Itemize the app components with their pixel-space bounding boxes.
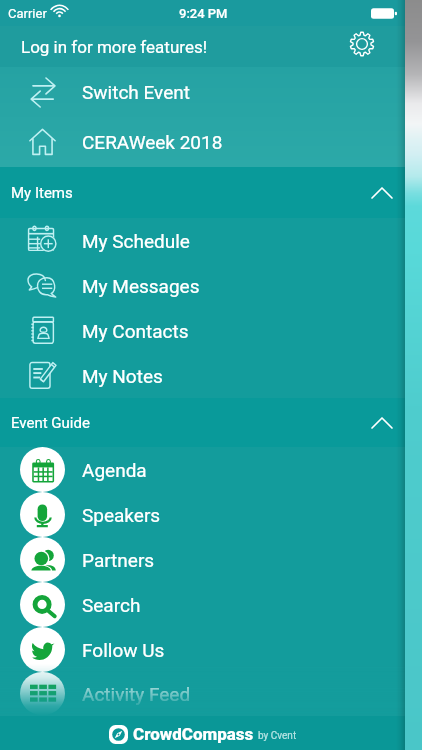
- staticText: My Items: [11, 184, 73, 202]
- staticText: My Notes: [82, 365, 163, 387]
- button[interactable]: My Notes: [0, 353, 405, 398]
- staticText: Event Guide: [11, 414, 90, 432]
- staticText: Log in for more features!: [21, 37, 208, 57]
- staticText: Follow Us: [82, 639, 165, 661]
- staticText: Activity Feed: [82, 683, 191, 705]
- button[interactable]: Search: [0, 582, 405, 627]
- staticText: Partners: [82, 549, 155, 571]
- button[interactable]: CERAWeek 2018: [0, 117, 405, 167]
- staticText: Speakers: [82, 504, 161, 526]
- button[interactable]: Switch Event: [0, 67, 405, 117]
- button[interactable]: My Items: [0, 167, 405, 218]
- staticText: Carrier: [8, 6, 47, 21]
- staticText: by Cvent: [258, 730, 297, 742]
- staticText: Search: [82, 594, 141, 616]
- staticText: CERAWeek 2018: [82, 131, 223, 153]
- button[interactable]: Speakers: [0, 492, 405, 537]
- button[interactable]: Log in for more features!: [0, 26, 405, 67]
- button[interactable]: Settings: [345, 27, 379, 61]
- staticText: My Schedule: [82, 230, 190, 252]
- button[interactable]: My Contacts: [0, 308, 405, 353]
- staticText: My Contacts: [82, 320, 189, 342]
- button[interactable]: My Schedule: [0, 218, 405, 263]
- button[interactable]: Follow Us: [0, 627, 405, 672]
- button[interactable]: My Messages: [0, 263, 405, 308]
- staticText: 9:24 PM: [179, 6, 228, 21]
- button[interactable]: Activity Feed: [0, 672, 405, 715]
- button[interactable]: Event Guide: [0, 398, 405, 447]
- staticText: Switch Event: [82, 81, 190, 103]
- staticText: Agenda: [82, 459, 147, 481]
- button[interactable]: Partners: [0, 537, 405, 582]
- staticText: My Messages: [82, 275, 200, 297]
- button[interactable]: Agenda: [0, 447, 405, 492]
- staticText: CrowdCompass: [133, 724, 254, 744]
